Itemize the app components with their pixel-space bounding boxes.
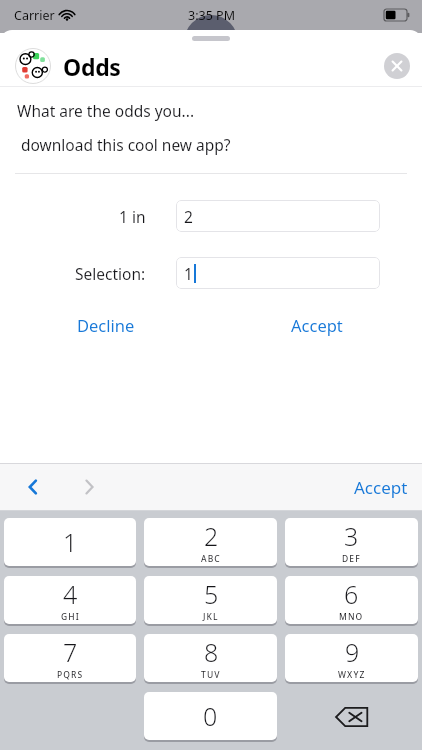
staticText: 6 bbox=[344, 577, 359, 611]
staticText: 2 bbox=[204, 519, 219, 553]
staticText: Carrier bbox=[14, 7, 55, 24]
staticText: What are the odds you... bbox=[17, 100, 195, 121]
button[interactable]: 3 bbox=[285, 518, 418, 566]
staticText: Decline bbox=[77, 314, 135, 336]
staticText: 4 bbox=[63, 577, 78, 611]
button[interactable]: Backspace bbox=[281, 692, 422, 742]
staticText: 1 bbox=[63, 525, 78, 559]
staticText: Accept bbox=[354, 476, 408, 499]
staticText: Accept bbox=[291, 314, 343, 336]
staticText: ABC bbox=[201, 553, 221, 565]
button[interactable]: Decline bbox=[0, 311, 211, 339]
staticText: 8 bbox=[204, 635, 219, 669]
staticText: 0 bbox=[203, 699, 218, 733]
button[interactable]: 2 bbox=[144, 518, 277, 566]
staticText: 3:35 PM bbox=[188, 7, 235, 24]
button[interactable]: 7 bbox=[4, 634, 136, 682]
staticText: MNO bbox=[339, 611, 364, 623]
staticText: 1 bbox=[184, 263, 193, 284]
staticText: Selection: bbox=[75, 263, 146, 284]
button[interactable]: 2 bbox=[176, 200, 380, 232]
button[interactable]: 0 bbox=[144, 692, 277, 740]
staticText: 7 bbox=[63, 635, 78, 669]
button[interactable]: Accept bbox=[211, 311, 422, 339]
button[interactable]: 1 bbox=[4, 518, 136, 566]
staticText: PQRS bbox=[57, 669, 84, 681]
button[interactable]: 9 bbox=[285, 634, 418, 682]
button[interactable]: Previous field bbox=[16, 470, 50, 504]
staticText: download this cool new app? bbox=[21, 134, 231, 155]
staticText: DEF bbox=[342, 553, 361, 565]
button[interactable]: 4 bbox=[4, 576, 136, 624]
staticText: 2 bbox=[184, 206, 193, 227]
button[interactable]: Accept bbox=[354, 465, 408, 509]
staticText: 5 bbox=[204, 577, 219, 611]
button[interactable]: 5 bbox=[144, 576, 277, 624]
button[interactable]: Close bbox=[384, 53, 410, 79]
button[interactable]: Next field bbox=[72, 470, 106, 504]
button[interactable]: 8 bbox=[144, 634, 277, 682]
staticText: 1 in bbox=[119, 206, 146, 227]
staticText: Odds bbox=[63, 51, 121, 82]
staticText: GHI bbox=[61, 611, 80, 623]
button[interactable]: 6 bbox=[285, 576, 418, 624]
staticText: WXYZ bbox=[338, 669, 366, 681]
staticText: 3 bbox=[344, 519, 359, 553]
staticText: 9 bbox=[345, 635, 360, 669]
staticText: JKL bbox=[203, 611, 219, 623]
staticText: TUV bbox=[201, 669, 221, 681]
button[interactable]: 1 bbox=[176, 257, 380, 289]
